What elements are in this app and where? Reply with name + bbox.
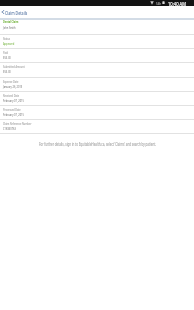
staticText: February 07, 2015	[3, 112, 24, 117]
staticText: $53.30	[3, 69, 11, 74]
staticText: February 07, 2015	[3, 98, 24, 103]
button[interactable]: Expense Date	[0, 77, 194, 91]
staticText: Dental Claim	[3, 19, 19, 24]
staticText: Paid	[3, 50, 8, 55]
button[interactable]: Submitted Amount	[0, 62, 194, 76]
staticText: January 26, 2015	[3, 84, 23, 89]
staticText: 10:40 AM	[168, 1, 186, 7]
button[interactable]: Received Date	[0, 91, 194, 105]
staticText: Approved	[3, 41, 15, 46]
staticText: Processed Date	[3, 107, 21, 112]
staticText: Claim Details	[5, 9, 27, 17]
staticText: For further details, sign in to Equitabl…	[39, 141, 156, 147]
staticText: Claim Reference Number	[3, 121, 31, 126]
button[interactable]: Claim Reference Number	[0, 119, 194, 133]
staticText: John Smith	[3, 25, 16, 30]
staticText: C18330763	[3, 126, 16, 131]
staticText: Status	[3, 36, 10, 41]
staticText: $53.30	[3, 55, 11, 60]
button[interactable]: Back	[0, 6, 194, 18]
button[interactable]: Paid	[0, 48, 194, 62]
other: Back	[2, 10, 4, 14]
staticText: Received Date	[3, 93, 19, 98]
button[interactable]: Processed Date	[0, 105, 194, 119]
staticText: Submitted Amount	[3, 64, 25, 69]
button[interactable]: Status	[0, 34, 194, 48]
staticText: Expense Date	[3, 79, 18, 84]
staticText: 54h	[156, 1, 161, 6]
